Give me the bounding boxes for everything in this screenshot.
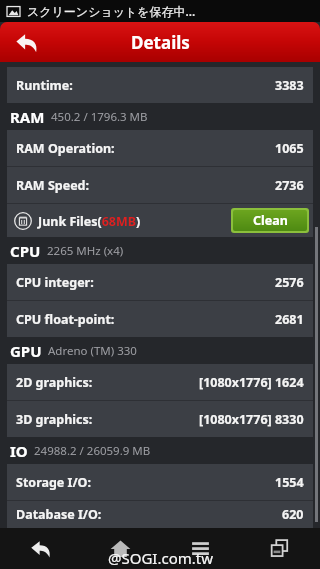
staticText: Runtime: — [16, 77, 73, 94]
staticText: 2D graphics: — [16, 374, 93, 391]
button[interactable]: Runtime: — [7, 67, 313, 103]
staticText: GPU — [10, 341, 42, 361]
staticText: RAM Speed: — [16, 177, 90, 194]
staticText: 3D graphics: — [16, 411, 93, 428]
staticText: スクリーンショットを保存中... — [27, 3, 196, 19]
staticText: [1080x1776] 8330 — [199, 411, 304, 428]
staticText: 2265 MHz (x4) — [47, 243, 124, 259]
staticText: Adreno (TM) 330 — [48, 343, 137, 359]
button[interactable]: CPU float-point: — [7, 301, 313, 337]
staticText: 1554 — [275, 474, 304, 491]
staticText: CPU integer: — [16, 274, 94, 291]
staticText: 3383 — [275, 77, 304, 94]
staticText: 620 — [282, 506, 304, 523]
staticText: 2681 — [275, 311, 304, 328]
staticText: Database I/O: — [16, 506, 102, 523]
staticText: RAM — [10, 107, 45, 127]
staticText: Clean — [253, 212, 288, 229]
staticText: 1065 — [275, 140, 304, 157]
button[interactable]: Clean — [233, 210, 307, 231]
button[interactable]: RAM Speed: — [7, 167, 313, 203]
button[interactable]: Menu — [160, 528, 240, 569]
button[interactable]: Junk Files(68MB) — [14, 212, 141, 230]
staticText: RAM Operation: — [16, 140, 115, 157]
staticText: @SOGI.com.tw — [108, 548, 213, 568]
staticText: CPU float-point: — [16, 311, 115, 328]
staticText: IO — [10, 441, 28, 461]
staticText: Junk Files(68MB) — [38, 213, 141, 230]
button[interactable]: Home — [80, 528, 160, 569]
staticText: CPU — [10, 241, 41, 261]
button[interactable]: Back — [0, 22, 52, 62]
button[interactable]: 2D graphics: — [7, 364, 313, 400]
button[interactable]: Recents — [240, 528, 320, 569]
staticText: [1080x1776] 1624 — [199, 374, 304, 391]
button[interactable]: Database I/O: — [7, 501, 313, 528]
button[interactable]: CPU integer: — [7, 264, 313, 300]
staticText: Details — [131, 31, 190, 54]
staticText: 24988.2 / 26059.9 MB — [34, 443, 151, 459]
button[interactable]: Storage I/O: — [7, 464, 313, 500]
button[interactable]: 3D graphics: — [7, 401, 313, 437]
staticText: Storage I/O: — [16, 474, 92, 491]
staticText: 450.2 / 1796.3 MB — [51, 109, 148, 125]
button[interactable]: RAM Operation: — [7, 130, 313, 166]
button[interactable]: Back — [0, 528, 80, 569]
staticText: 2576 — [275, 274, 304, 291]
staticText: 2736 — [275, 177, 304, 194]
